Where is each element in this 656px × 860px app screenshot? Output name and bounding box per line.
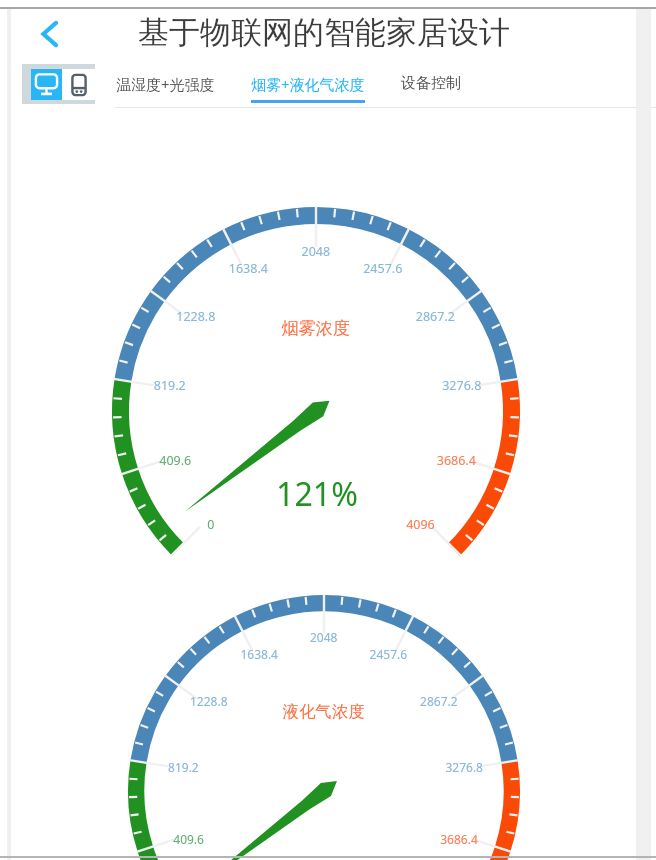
staticText: 基于物联网的智能家居设计: [138, 13, 510, 52]
staticText: 设备控制: [401, 74, 461, 93]
staticText: 温湿度+光强度: [116, 74, 215, 94]
button[interactable]: Desktop view: [31, 69, 62, 100]
staticText: 烟雾+液化气浓度: [251, 74, 365, 94]
button[interactable]: 烟雾+液化气浓度: [251, 59, 365, 109]
button[interactable]: 温湿度+光强度: [113, 59, 217, 109]
button[interactable]: Mobile view: [62, 69, 95, 100]
button[interactable]: 设备控制: [397, 59, 465, 109]
button[interactable]: Back: [20, 9, 80, 59]
